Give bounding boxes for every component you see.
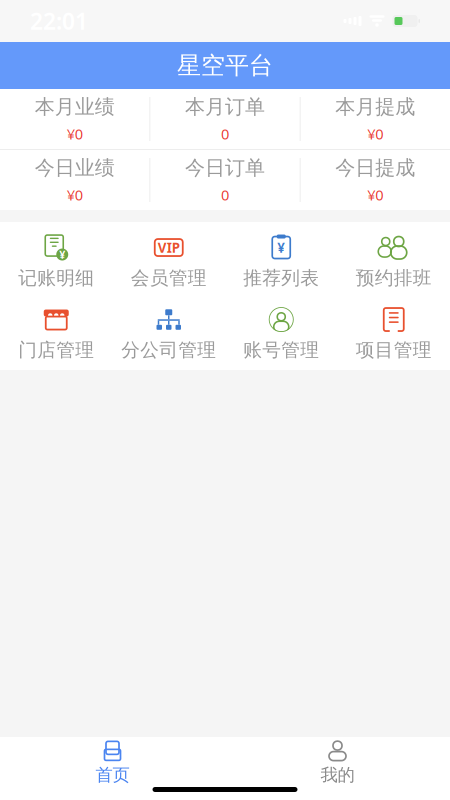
staticText: ¥0: [367, 124, 383, 143]
button[interactable]: 今日订单: [150, 150, 300, 210]
button[interactable]: VIP: [112, 226, 225, 298]
staticText: 分公司管理: [121, 338, 216, 361]
staticText: 我的: [320, 764, 354, 786]
staticText: 0: [221, 185, 229, 204]
staticText: 会员管理: [131, 266, 207, 289]
button[interactable]: 账号管理: [225, 298, 337, 370]
staticText: 本月业绩: [35, 94, 115, 119]
button[interactable]: 本月提成: [301, 89, 450, 149]
button[interactable]: 门店管理: [0, 298, 112, 370]
button[interactable]: ¥: [225, 226, 337, 298]
staticText: 首页: [95, 764, 129, 786]
staticText: ¥0: [367, 185, 383, 204]
staticText: 0: [221, 124, 229, 143]
staticText: ¥: [277, 239, 285, 256]
staticText: 账号管理: [243, 338, 319, 361]
button[interactable]: ¥: [0, 226, 112, 298]
button[interactable]: 分公司管理: [112, 298, 225, 370]
staticText: 记账明细: [18, 266, 94, 289]
staticText: 门店管理: [18, 338, 94, 361]
button[interactable]: 本月业绩: [0, 89, 149, 149]
staticText: ¥: [59, 247, 65, 262]
staticText: 本月提成: [335, 94, 415, 119]
staticText: VIP: [158, 239, 180, 256]
staticText: 本月订单: [185, 94, 265, 119]
staticText: 今日业绩: [35, 155, 115, 180]
button[interactable]: 今日提成: [301, 150, 450, 210]
staticText: ¥0: [67, 185, 83, 204]
button[interactable]: 我的: [292, 741, 382, 785]
staticText: 推荐列表: [243, 266, 319, 289]
button[interactable]: 项目管理: [337, 298, 450, 370]
staticText: 今日订单: [185, 155, 265, 180]
button[interactable]: 预约排班: [337, 226, 450, 298]
staticText: ¥0: [67, 124, 83, 143]
staticText: 预约排班: [356, 266, 432, 289]
staticText: 星空平台: [177, 51, 273, 80]
button[interactable]: 今日业绩: [0, 150, 149, 210]
staticText: 今日提成: [335, 155, 415, 180]
staticText: 项目管理: [356, 338, 432, 361]
button[interactable]: 本月订单: [150, 89, 300, 149]
button[interactable]: 首页: [67, 741, 157, 785]
